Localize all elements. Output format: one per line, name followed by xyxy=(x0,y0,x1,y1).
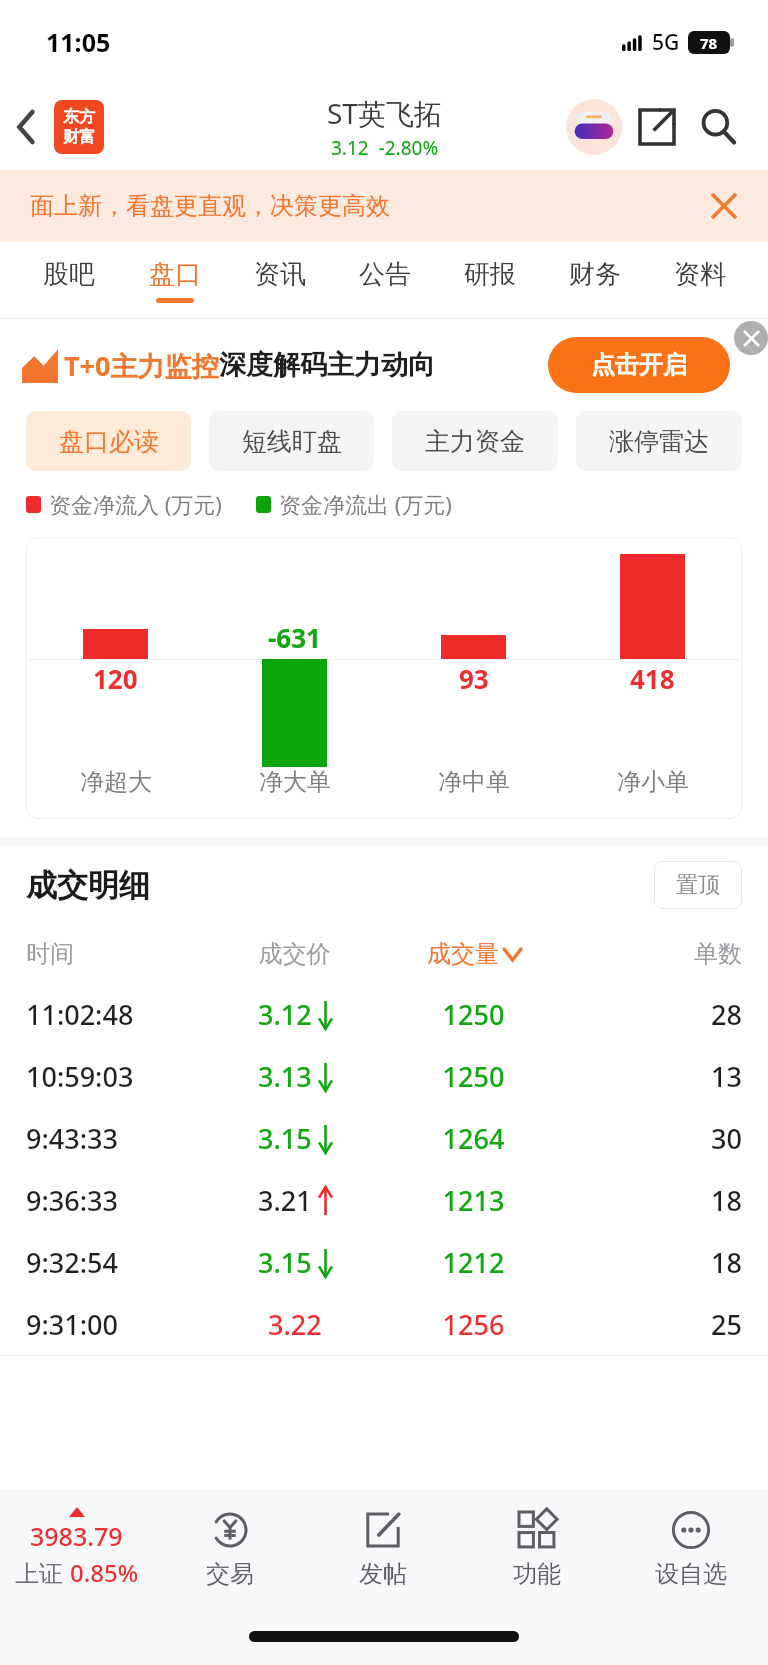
button[interactable]: Share xyxy=(626,96,688,158)
staticText: 财富 xyxy=(63,127,95,147)
staticText: 功能 xyxy=(513,1559,561,1589)
staticText: 25 xyxy=(563,1306,742,1343)
button[interactable]: 9:32:54 xyxy=(26,1231,742,1293)
staticText: 盘口必读 xyxy=(59,426,159,457)
staticText: 深度解码主力动向 xyxy=(219,348,435,382)
staticText: 单数 xyxy=(563,939,742,969)
staticText: 3.12 -2.80% xyxy=(331,135,439,161)
button[interactable]: 3983.79 xyxy=(0,1489,153,1607)
staticText: 主力资金 xyxy=(425,426,525,457)
staticText: 9:32:54 xyxy=(26,1244,205,1281)
button[interactable]: 成交量 xyxy=(384,939,563,969)
button[interactable]: 主力资金 xyxy=(392,411,558,471)
button[interactable]: Close promo xyxy=(734,321,768,355)
staticText: 10:59:03 xyxy=(26,1058,205,1095)
staticText: 1264 xyxy=(384,1120,563,1157)
staticText: 净超大 xyxy=(80,767,152,797)
staticText: 9:43:33 xyxy=(26,1120,205,1157)
other: Add to watchlist xyxy=(671,1510,711,1550)
staticText: 净大单 xyxy=(259,767,331,797)
staticText: 0.85% xyxy=(70,1556,139,1589)
staticText: 面上新，看盘更直观，决策更高效 xyxy=(30,191,390,221)
staticText: 9:31:00 xyxy=(26,1306,205,1343)
staticText: 1250 xyxy=(384,1058,563,1095)
staticText: 3.13 xyxy=(258,1058,312,1095)
staticText: 财务 xyxy=(569,258,621,291)
staticText: 9:36:33 xyxy=(26,1182,205,1219)
staticText: 发帖 xyxy=(359,1559,407,1589)
button[interactable]: AI assistant xyxy=(562,95,626,159)
staticText: 成交量 xyxy=(427,939,499,969)
staticText: 成交明细 xyxy=(26,866,150,905)
button[interactable]: Post xyxy=(306,1489,460,1607)
staticText: 13 xyxy=(563,1058,742,1095)
button[interactable]: Back xyxy=(0,101,52,153)
staticText: 5G xyxy=(652,28,680,57)
staticText: 30 xyxy=(563,1120,742,1157)
staticText: -631 xyxy=(268,620,321,655)
button[interactable]: 研报 xyxy=(437,242,542,318)
staticText: 资料 xyxy=(674,258,726,291)
button[interactable]: 财务 xyxy=(542,242,647,318)
staticText: ST英飞拓 xyxy=(327,94,442,132)
staticText: 1213 xyxy=(384,1182,563,1219)
staticText: 东方 xyxy=(63,107,95,127)
button[interactable]: 11:02:48 xyxy=(26,983,742,1045)
staticText: 1250 xyxy=(384,996,563,1033)
staticText: 3983.79 xyxy=(30,1519,123,1553)
other: Post xyxy=(364,1511,402,1549)
staticText: 11:02:48 xyxy=(26,996,205,1033)
button[interactable]: 9:31:00 xyxy=(26,1293,742,1355)
staticText: 418 xyxy=(630,661,675,696)
button[interactable]: Add to watchlist xyxy=(614,1489,768,1607)
staticText: 3.22 xyxy=(268,1306,322,1343)
button[interactable]: Search xyxy=(688,96,750,158)
staticText: 置顶 xyxy=(676,871,720,899)
staticText: 时间 xyxy=(26,939,205,969)
other: Trade xyxy=(210,1510,250,1550)
staticText: 11:05 xyxy=(46,25,111,59)
button[interactable]: 盘口必读 xyxy=(26,411,191,471)
staticText: 3.21 xyxy=(258,1182,312,1219)
staticText: 公告 xyxy=(359,258,411,291)
staticText: 3.15 xyxy=(258,1244,312,1281)
staticText: 交易 xyxy=(206,1559,254,1589)
button[interactable]: 短线盯盘 xyxy=(209,411,374,471)
button[interactable]: 置顶 xyxy=(654,861,742,909)
staticText: 78 xyxy=(700,33,718,53)
staticText: 3.12 xyxy=(258,996,312,1033)
staticText: 120 xyxy=(93,661,138,696)
button[interactable]: 公告 xyxy=(332,242,437,318)
staticText: 28 xyxy=(563,996,742,1033)
staticText: 点击开启 xyxy=(591,350,687,380)
button[interactable]: 涨停雷达 xyxy=(576,411,742,471)
button[interactable]: 10:59:03 xyxy=(26,1045,742,1107)
button[interactable]: 东方财富 xyxy=(54,100,104,154)
button[interactable]: 9:36:33 xyxy=(26,1169,742,1231)
staticText: 资金净流出 (万元) xyxy=(279,489,452,519)
staticText: 股吧 xyxy=(43,258,95,291)
staticText: 3.15 xyxy=(258,1120,312,1157)
staticText: 资讯 xyxy=(254,258,306,291)
button[interactable]: 资讯 xyxy=(227,242,332,318)
button[interactable]: 点击开启 xyxy=(548,337,730,393)
button[interactable]: 盘口 xyxy=(122,242,227,318)
button[interactable]: 面上新，看盘更直观，决策更高效 xyxy=(0,170,768,242)
staticText: 18 xyxy=(563,1182,742,1219)
staticText: 1256 xyxy=(384,1306,563,1343)
staticText: 净中单 xyxy=(438,767,510,797)
staticText: 盘口 xyxy=(149,258,201,291)
button[interactable]: Close banner xyxy=(702,184,746,228)
button[interactable]: 资料 xyxy=(647,242,752,318)
button[interactable]: Trade xyxy=(153,1489,306,1607)
staticText: 设自选 xyxy=(655,1559,727,1589)
button[interactable]: 9:43:33 xyxy=(26,1107,742,1169)
other: Functions xyxy=(519,1512,555,1548)
button[interactable]: Functions xyxy=(460,1489,614,1607)
staticText: 短线盯盘 xyxy=(242,426,342,457)
staticText: 成交价 xyxy=(205,939,384,969)
staticText: 18 xyxy=(563,1244,742,1281)
staticText: 涨停雷达 xyxy=(609,426,709,457)
staticText: 93 xyxy=(459,661,489,696)
button[interactable]: 股吧 xyxy=(16,242,122,318)
